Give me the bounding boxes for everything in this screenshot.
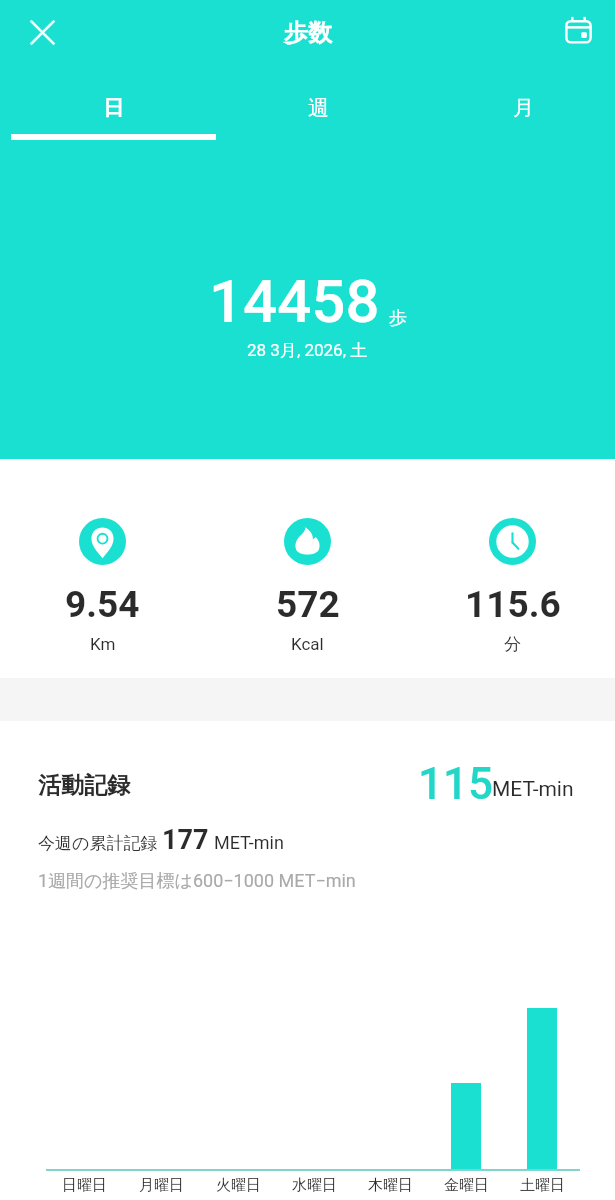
staticText: 9.54: [65, 583, 140, 626]
staticText: 572: [276, 583, 340, 626]
button[interactable]: 日: [11, 83, 216, 147]
staticText: 歩: [389, 307, 407, 330]
staticText: 木曜日: [368, 1176, 413, 1195]
staticText: 28 3月, 2026, 土: [247, 340, 368, 361]
staticText: 火曜日: [216, 1176, 261, 1195]
staticText: 日: [103, 95, 124, 121]
staticText: 分: [504, 634, 521, 655]
button[interactable]: 9.54: [0, 518, 205, 654]
staticText: 今週の累計記録: [38, 833, 158, 854]
staticText: 水曜日: [292, 1176, 337, 1195]
staticText: 14458: [209, 266, 380, 336]
staticText: 土曜日: [520, 1176, 565, 1195]
staticText: 115: [418, 758, 494, 810]
staticText: 177: [162, 824, 209, 856]
staticText: MET-min: [492, 777, 574, 802]
button[interactable]: 572: [205, 518, 410, 654]
staticText: 歩数: [284, 18, 332, 48]
button[interactable]: 115.6: [410, 518, 615, 655]
staticText: 1週間の推奨目標は600−1000 MET−min: [38, 870, 356, 893]
staticText: MET-min: [214, 832, 284, 853]
staticText: 活動記録: [38, 771, 130, 800]
staticText: 日曜日: [62, 1176, 107, 1195]
staticText: 115.6: [465, 583, 561, 626]
button[interactable]: Calendar: [554, 6, 602, 54]
staticText: 週: [308, 95, 329, 121]
staticText: Km: [90, 634, 116, 654]
staticText: Kcal: [291, 634, 324, 654]
staticText: 月曜日: [139, 1176, 184, 1195]
button[interactable]: 週: [216, 83, 421, 147]
button[interactable]: Close: [18, 8, 66, 56]
staticText: 金曜日: [444, 1176, 489, 1195]
staticText: 月: [513, 95, 534, 121]
button[interactable]: 月: [421, 83, 615, 147]
